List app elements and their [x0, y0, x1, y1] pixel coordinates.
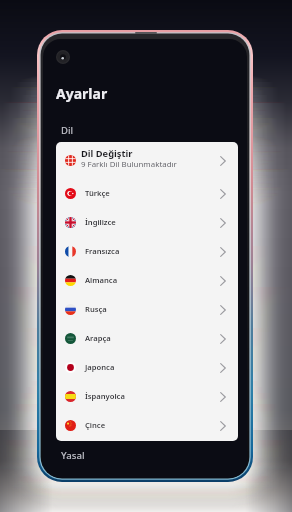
- staticText: İspanyolca: [85, 391, 219, 401]
- staticText: 9 Farklı Dil Bulunmaktadır: [81, 159, 177, 170]
- button[interactable]: Rusça: [56, 295, 238, 324]
- staticText: Rusça: [85, 304, 219, 314]
- staticText: Ayarlar: [56, 84, 108, 103]
- button[interactable]: İspanyolca: [56, 382, 238, 411]
- staticText: Fransızca: [85, 246, 219, 256]
- button[interactable]: Arapça: [56, 324, 238, 353]
- staticText: Almanca: [85, 275, 219, 285]
- button[interactable]: Fransızca: [56, 237, 238, 266]
- staticText: Türkçe: [85, 188, 219, 198]
- staticText: Arapça: [85, 333, 219, 343]
- button[interactable]: Almanca: [56, 266, 238, 295]
- button[interactable]: Japonca: [56, 353, 238, 382]
- button[interactable]: Çince: [56, 411, 238, 440]
- staticText: İngilizce: [85, 217, 219, 227]
- staticText: Yasal: [61, 449, 85, 462]
- button[interactable]: Türkçe: [56, 179, 238, 208]
- staticText: Çince: [85, 420, 219, 430]
- staticText: Dil Değiştir: [81, 147, 133, 160]
- staticText: Dil: [61, 124, 74, 137]
- button[interactable]: Dil Değiştir: [56, 142, 238, 179]
- staticText: Japonca: [85, 362, 219, 372]
- button[interactable]: İngilizce: [56, 208, 238, 237]
